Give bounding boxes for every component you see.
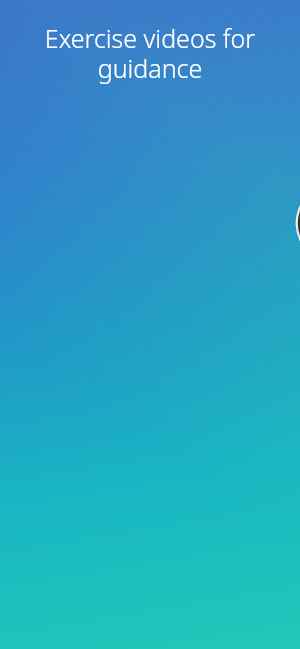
staticText: Exercise videos for guidance [14, 21, 286, 86]
button[interactable]: Exercise videos preview [0, 0, 300, 649]
